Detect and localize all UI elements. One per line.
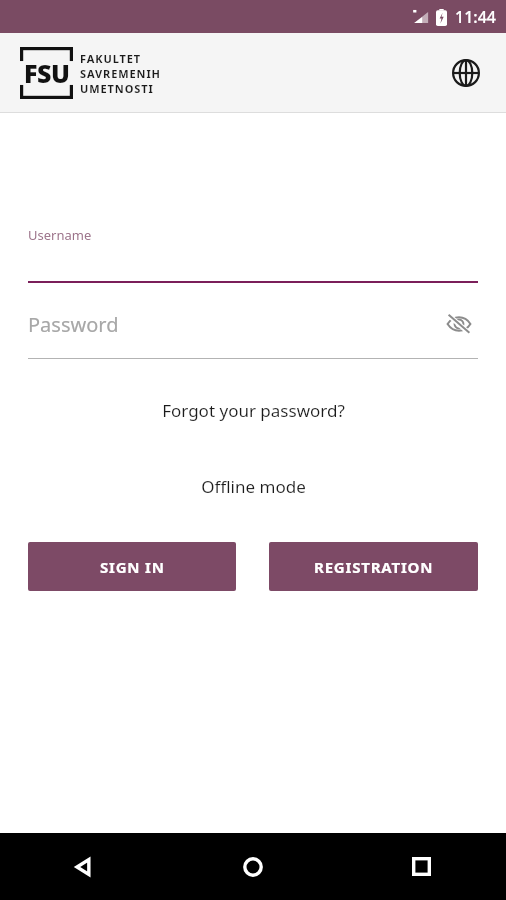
staticText: FSU: [24, 56, 70, 90]
button[interactable]: Forgot your password?: [0, 399, 506, 422]
button[interactable]: SIGN IN: [28, 542, 236, 591]
button[interactable]: Recents: [337, 833, 506, 900]
staticText: 11:44: [455, 6, 496, 28]
button[interactable]: Back: [0, 833, 168, 900]
button[interactable]: REGISTRATION: [269, 542, 478, 591]
button[interactable]: Offline mode: [0, 475, 506, 498]
staticText: Username: [28, 226, 92, 244]
staticText: Forgot your password?: [162, 399, 345, 422]
staticText: Password: [28, 311, 119, 338]
staticText: REGISTRATION: [314, 557, 434, 577]
button[interactable]: Show password: [440, 305, 478, 343]
staticText: SAVREMENIH: [80, 66, 161, 81]
staticText: SIGN IN: [100, 557, 165, 577]
staticText: FAKULTET: [80, 51, 142, 66]
button[interactable]: Home: [168, 833, 337, 900]
staticText: Offline mode: [201, 475, 306, 498]
staticText: UMETNOSTI: [80, 81, 154, 96]
button[interactable]: Language: [444, 51, 488, 95]
